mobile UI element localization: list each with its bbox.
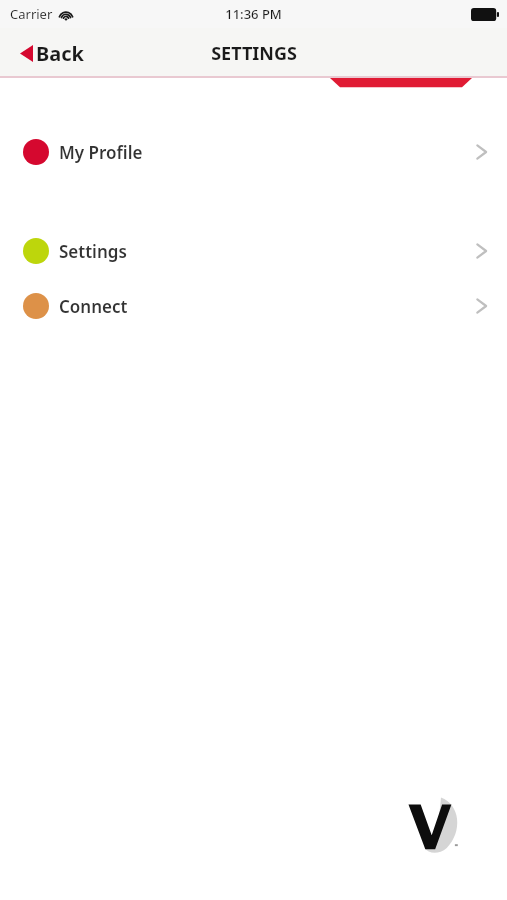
staticText: SETTINGS — [211, 41, 297, 66]
staticText: Back — [36, 40, 84, 67]
staticText: My Profile — [59, 141, 143, 164]
button[interactable]: My Profile — [0, 138, 507, 166]
button[interactable]: Settings — [0, 237, 507, 265]
staticText: 11:36 PM — [225, 5, 282, 23]
button[interactable]: Back — [14, 34, 90, 73]
staticText: Connect — [59, 295, 128, 318]
staticText: Carrier — [10, 5, 53, 23]
button[interactable]: Connect — [0, 292, 507, 320]
staticText: Settings — [59, 240, 127, 263]
